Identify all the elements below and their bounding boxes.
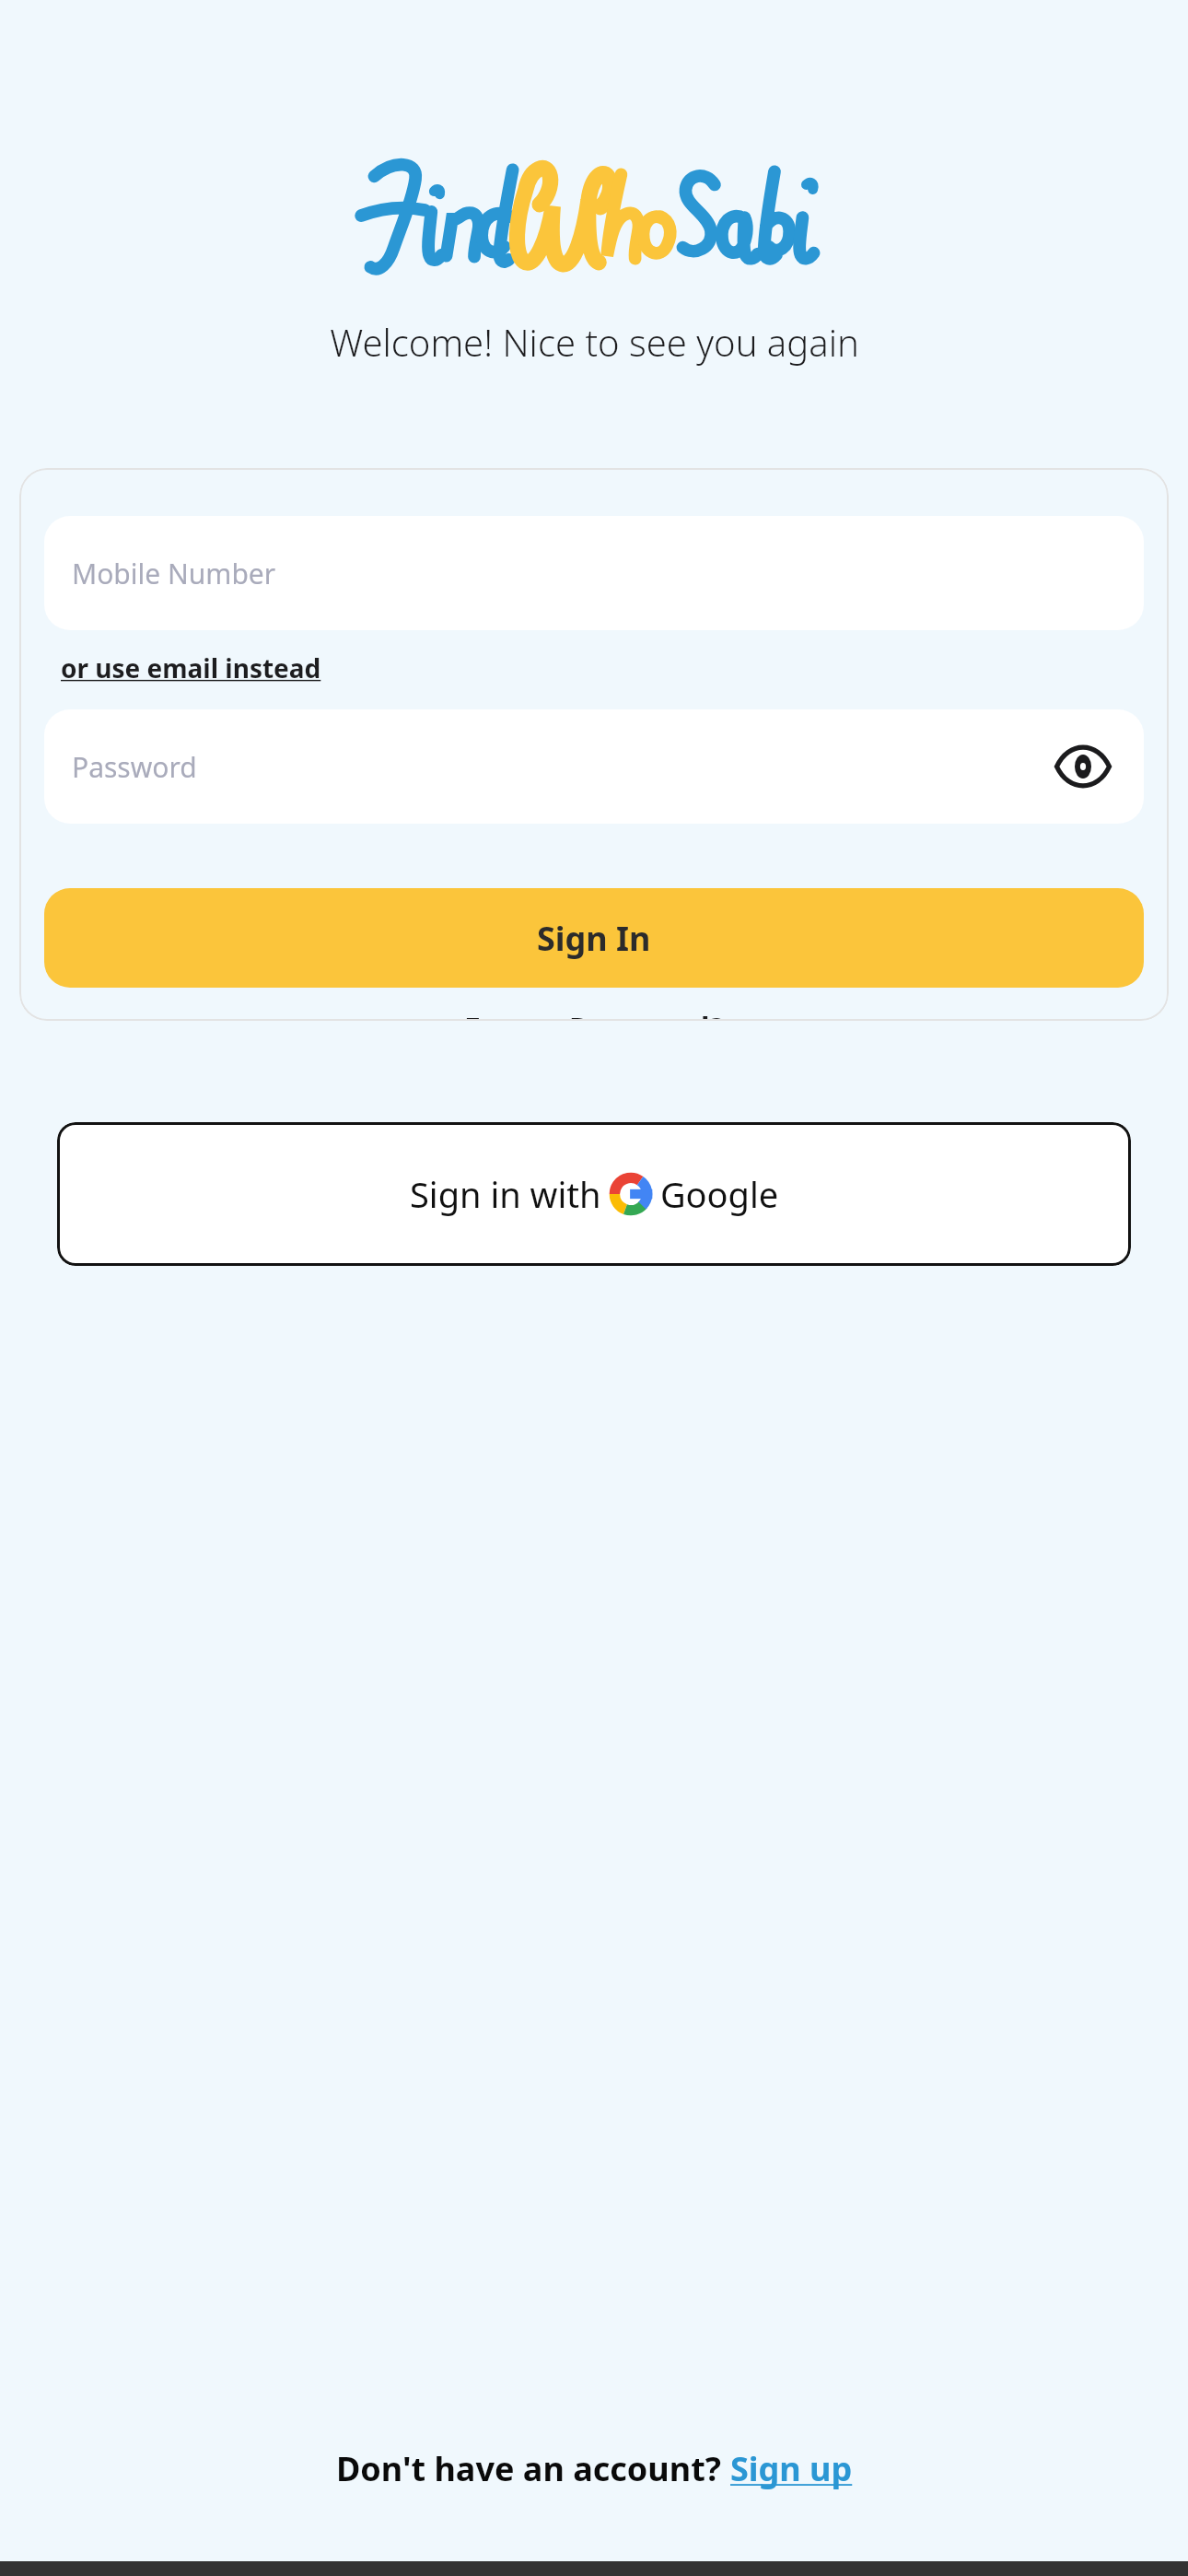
staticText: Sign in with (410, 1170, 611, 1218)
button[interactable]: Sign in with (57, 1122, 1131, 1266)
button[interactable]: Sign In (44, 888, 1144, 988)
staticText: Don't have an account? (336, 2446, 730, 2491)
staticText: Password (72, 748, 197, 786)
staticText: Welcome! Nice to see you again (330, 317, 859, 367)
staticText: or use email instead (61, 650, 321, 685)
button[interactable]: or use email instead (44, 647, 338, 689)
button[interactable]: Mobile Number (44, 516, 1144, 630)
button[interactable]: Show password (1050, 733, 1116, 800)
staticText: Forgot Password? (464, 1008, 724, 1021)
staticText: Google (651, 1170, 779, 1218)
button[interactable]: Password (44, 709, 1144, 824)
staticText: Mobile Number (72, 555, 276, 592)
button[interactable]: Forgot Password? (44, 1008, 1144, 1021)
staticText: Sign In (537, 916, 651, 961)
button[interactable]: Sign up (730, 2446, 853, 2491)
staticText: Sign up (730, 2446, 853, 2491)
